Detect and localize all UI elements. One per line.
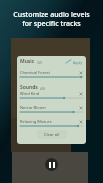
staticText: Chemical Forest <box>20 70 50 75</box>
staticText: Clear all <box>44 132 60 137</box>
other: Remove <box>79 106 83 110</box>
button[interactable]: Nectar Bloom <box>17 105 86 113</box>
staticText: Relaxing Mixture <box>20 119 52 124</box>
staticText: Customize audio levels for specific trac… <box>0 10 103 28</box>
button[interactable]: Relaxing Mixture <box>17 119 86 127</box>
other: Remove <box>79 71 83 75</box>
staticText: Sounds <box>20 84 38 91</box>
staticText: Wind Kind <box>20 91 40 96</box>
staticText: 4/6 <box>40 86 46 91</box>
other: Remove <box>79 92 83 96</box>
button[interactable]: Chemical Forest <box>17 70 86 78</box>
button[interactable]: Clear all <box>37 130 67 139</box>
staticText: Apply <box>73 60 83 65</box>
button[interactable]: Pause <box>45 158 58 171</box>
button[interactable]: Apply <box>65 58 83 65</box>
other: Remove <box>79 120 83 124</box>
button[interactable]: Wind Kind <box>17 91 86 99</box>
staticText: Music <box>20 58 35 65</box>
staticText: 3/5 <box>37 60 43 65</box>
staticText: Nectar Bloom <box>20 105 46 110</box>
